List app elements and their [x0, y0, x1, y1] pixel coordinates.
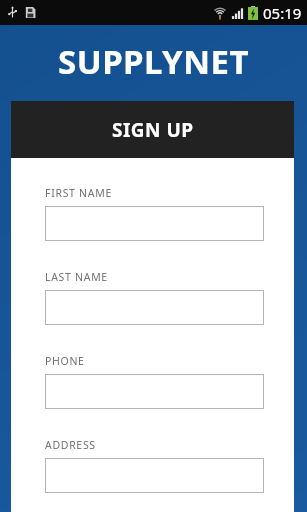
other: Signal — [231, 7, 244, 20]
button[interactable] — [45, 206, 264, 241]
staticText: ADDRESS — [45, 438, 96, 452]
button[interactable] — [45, 290, 264, 325]
staticText: FIRST NAME — [45, 186, 112, 200]
staticText: SUPPLYNET — [58, 39, 250, 84]
other: Battery — [248, 6, 258, 21]
other: USB — [6, 6, 19, 19]
other: SD card — [24, 6, 37, 19]
staticText: SIGN UP — [112, 117, 194, 143]
button[interactable]: SIGN UP — [11, 101, 294, 158]
staticText: PHONE — [45, 354, 85, 368]
button[interactable] — [45, 458, 264, 493]
button[interactable] — [45, 374, 264, 409]
staticText: 05:19 — [263, 3, 302, 23]
other: Wi-Fi — [213, 6, 227, 20]
staticText: LAST NAME — [45, 270, 108, 284]
